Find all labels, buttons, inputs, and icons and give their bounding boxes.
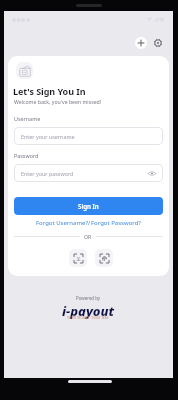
staticText: Let's Sign You In <box>13 85 86 97</box>
button[interactable]: Enter your username <box>14 127 163 145</box>
button[interactable]: Enter your password <box>14 164 163 182</box>
button[interactable]: Face ID <box>69 249 87 267</box>
staticText: Powered by <box>76 295 101 301</box>
staticText: Password <box>14 152 39 159</box>
button[interactable]: Forgot Password? <box>91 219 141 227</box>
staticText: YOUR MONEY. YOUR WAY. <box>67 316 110 320</box>
staticText: Enter your username <box>21 133 75 140</box>
button[interactable]: Forgot Username?/ <box>36 219 91 227</box>
button[interactable]: Sign In <box>14 197 163 215</box>
button[interactable]: Fingerprint <box>95 249 113 267</box>
button[interactable]: Settings <box>152 37 164 49</box>
staticText: Username <box>14 115 41 122</box>
staticText: Welcome back, you've been missed! <box>14 98 102 105</box>
staticText: i-payout <box>62 302 115 320</box>
staticText: OR <box>84 233 92 240</box>
button[interactable]: Add <box>135 37 147 49</box>
staticText: Enter your password <box>21 170 74 177</box>
staticText: Sign In <box>78 202 99 210</box>
